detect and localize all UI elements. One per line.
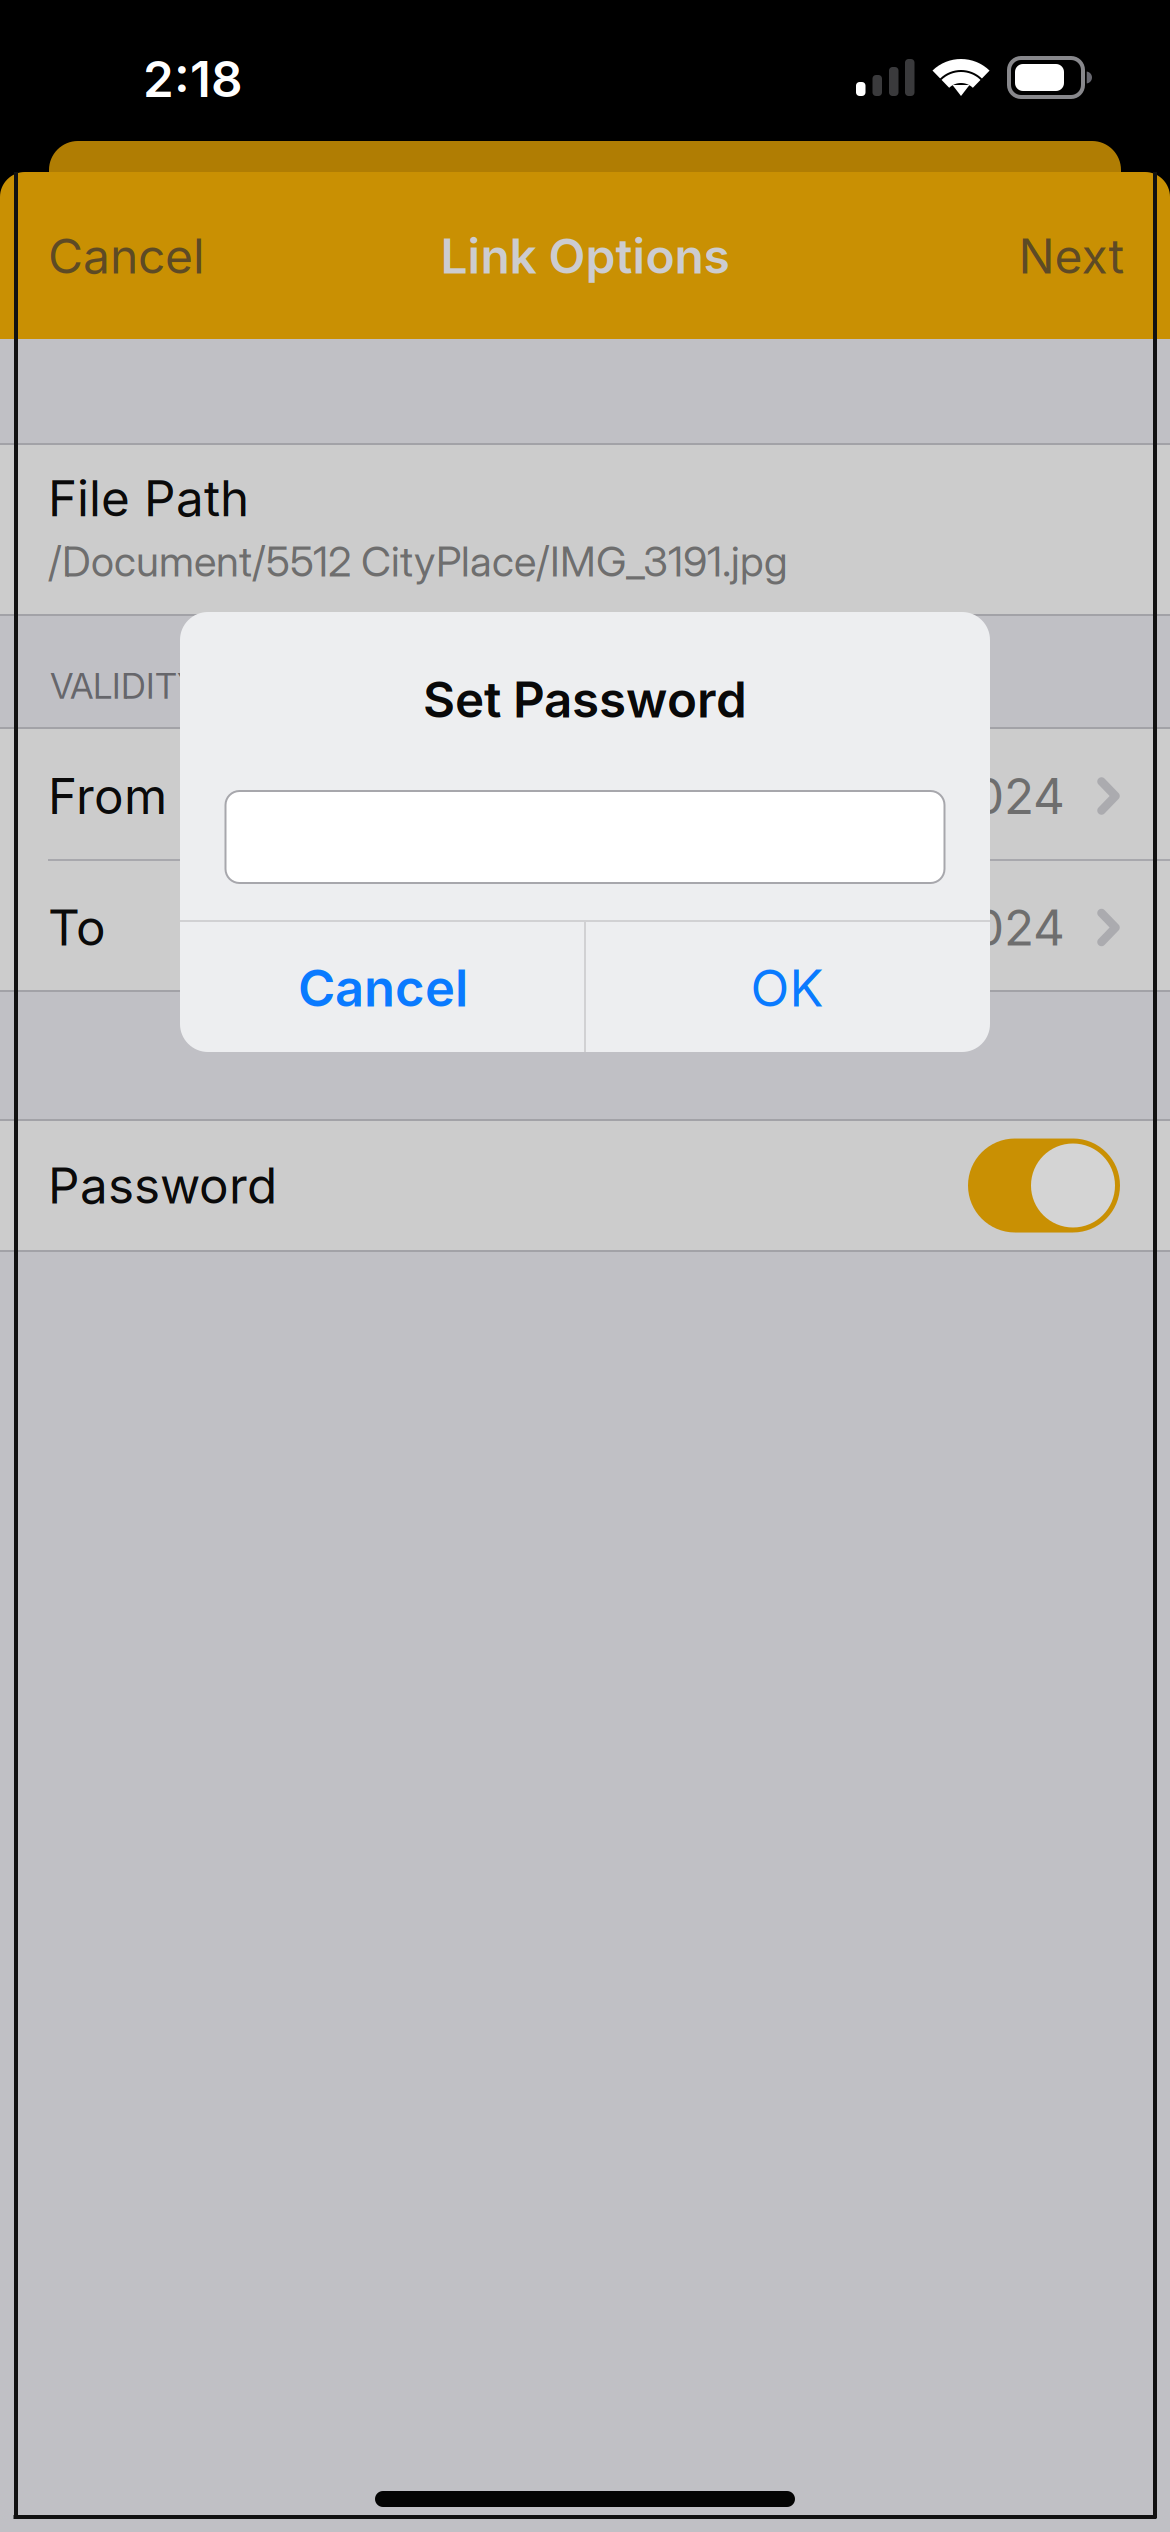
staticText: Link Options [440,227,729,285]
button[interactable]: OK [585,922,989,1053]
staticText: 2:18 [143,49,243,109]
staticText: File Path [48,468,249,528]
button[interactable]: Cancel [181,922,585,1053]
staticText: Jun 7, 2024 [793,766,1065,826]
staticText: Set Password [423,670,747,729]
button[interactable]: Next [924,196,1124,316]
button[interactable]: From [48,730,1120,862]
button[interactable]: Cancel [48,196,298,316]
staticText: Jul 7, 2024 [810,898,1065,957]
staticText: VALIDITY [50,665,200,707]
staticText: Cancel [48,227,205,285]
staticText: /Document/5512 CityPlace/IMG_3191.jpg [48,536,788,586]
staticText: OK [750,957,823,1019]
staticText: Next [1018,227,1124,285]
staticText: From [48,766,167,826]
button[interactable]: To [48,862,1120,993]
staticText: Cancel [298,957,468,1019]
staticText: Password [48,1156,277,1215]
button[interactable]: File Path [48,442,1120,613]
staticText: To [48,898,106,957]
button[interactable]: Password [48,1120,1120,1251]
